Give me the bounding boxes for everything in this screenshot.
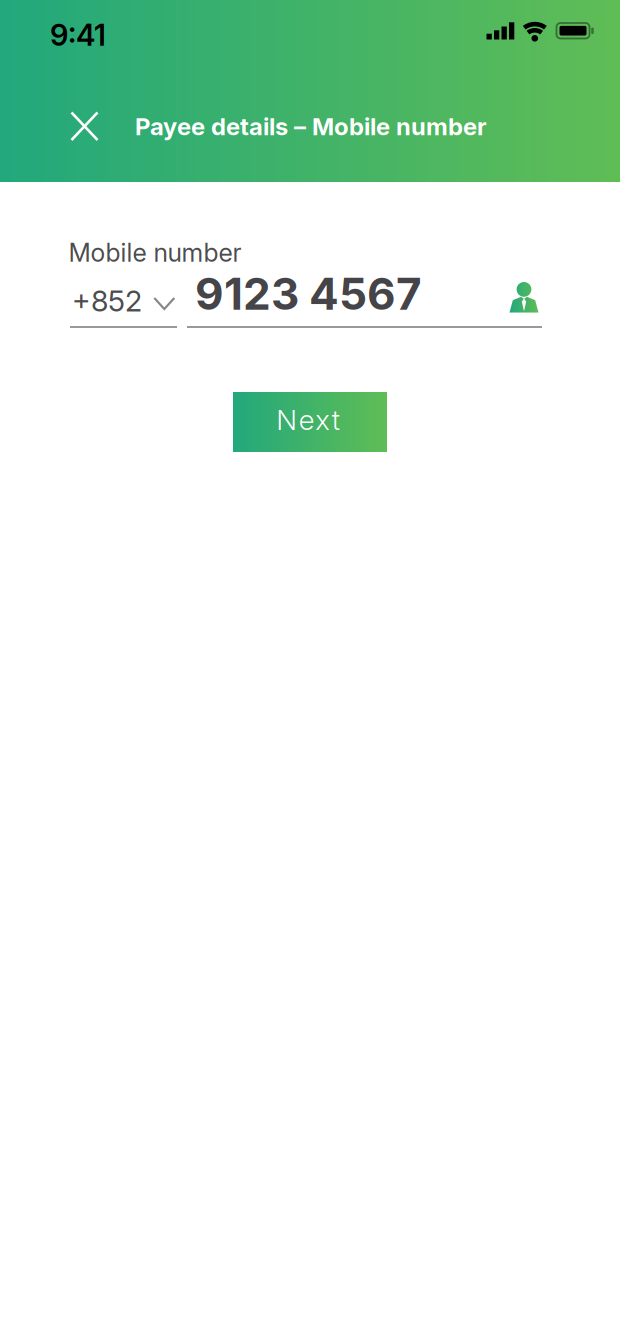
button[interactable]: +852 — [70, 282, 177, 326]
button[interactable]: Next — [233, 392, 387, 452]
staticText: Payee details – Mobile number — [135, 112, 487, 141]
staticText: 9123 4567 — [195, 267, 422, 320]
button[interactable]: Choose payee from contacts — [506, 276, 542, 316]
button[interactable]: Close — [61, 102, 107, 150]
staticText: Next — [276, 403, 340, 437]
staticText: Mobile number — [68, 237, 241, 268]
staticText: 9:41 — [50, 17, 106, 53]
staticText: +852 — [72, 283, 142, 318]
